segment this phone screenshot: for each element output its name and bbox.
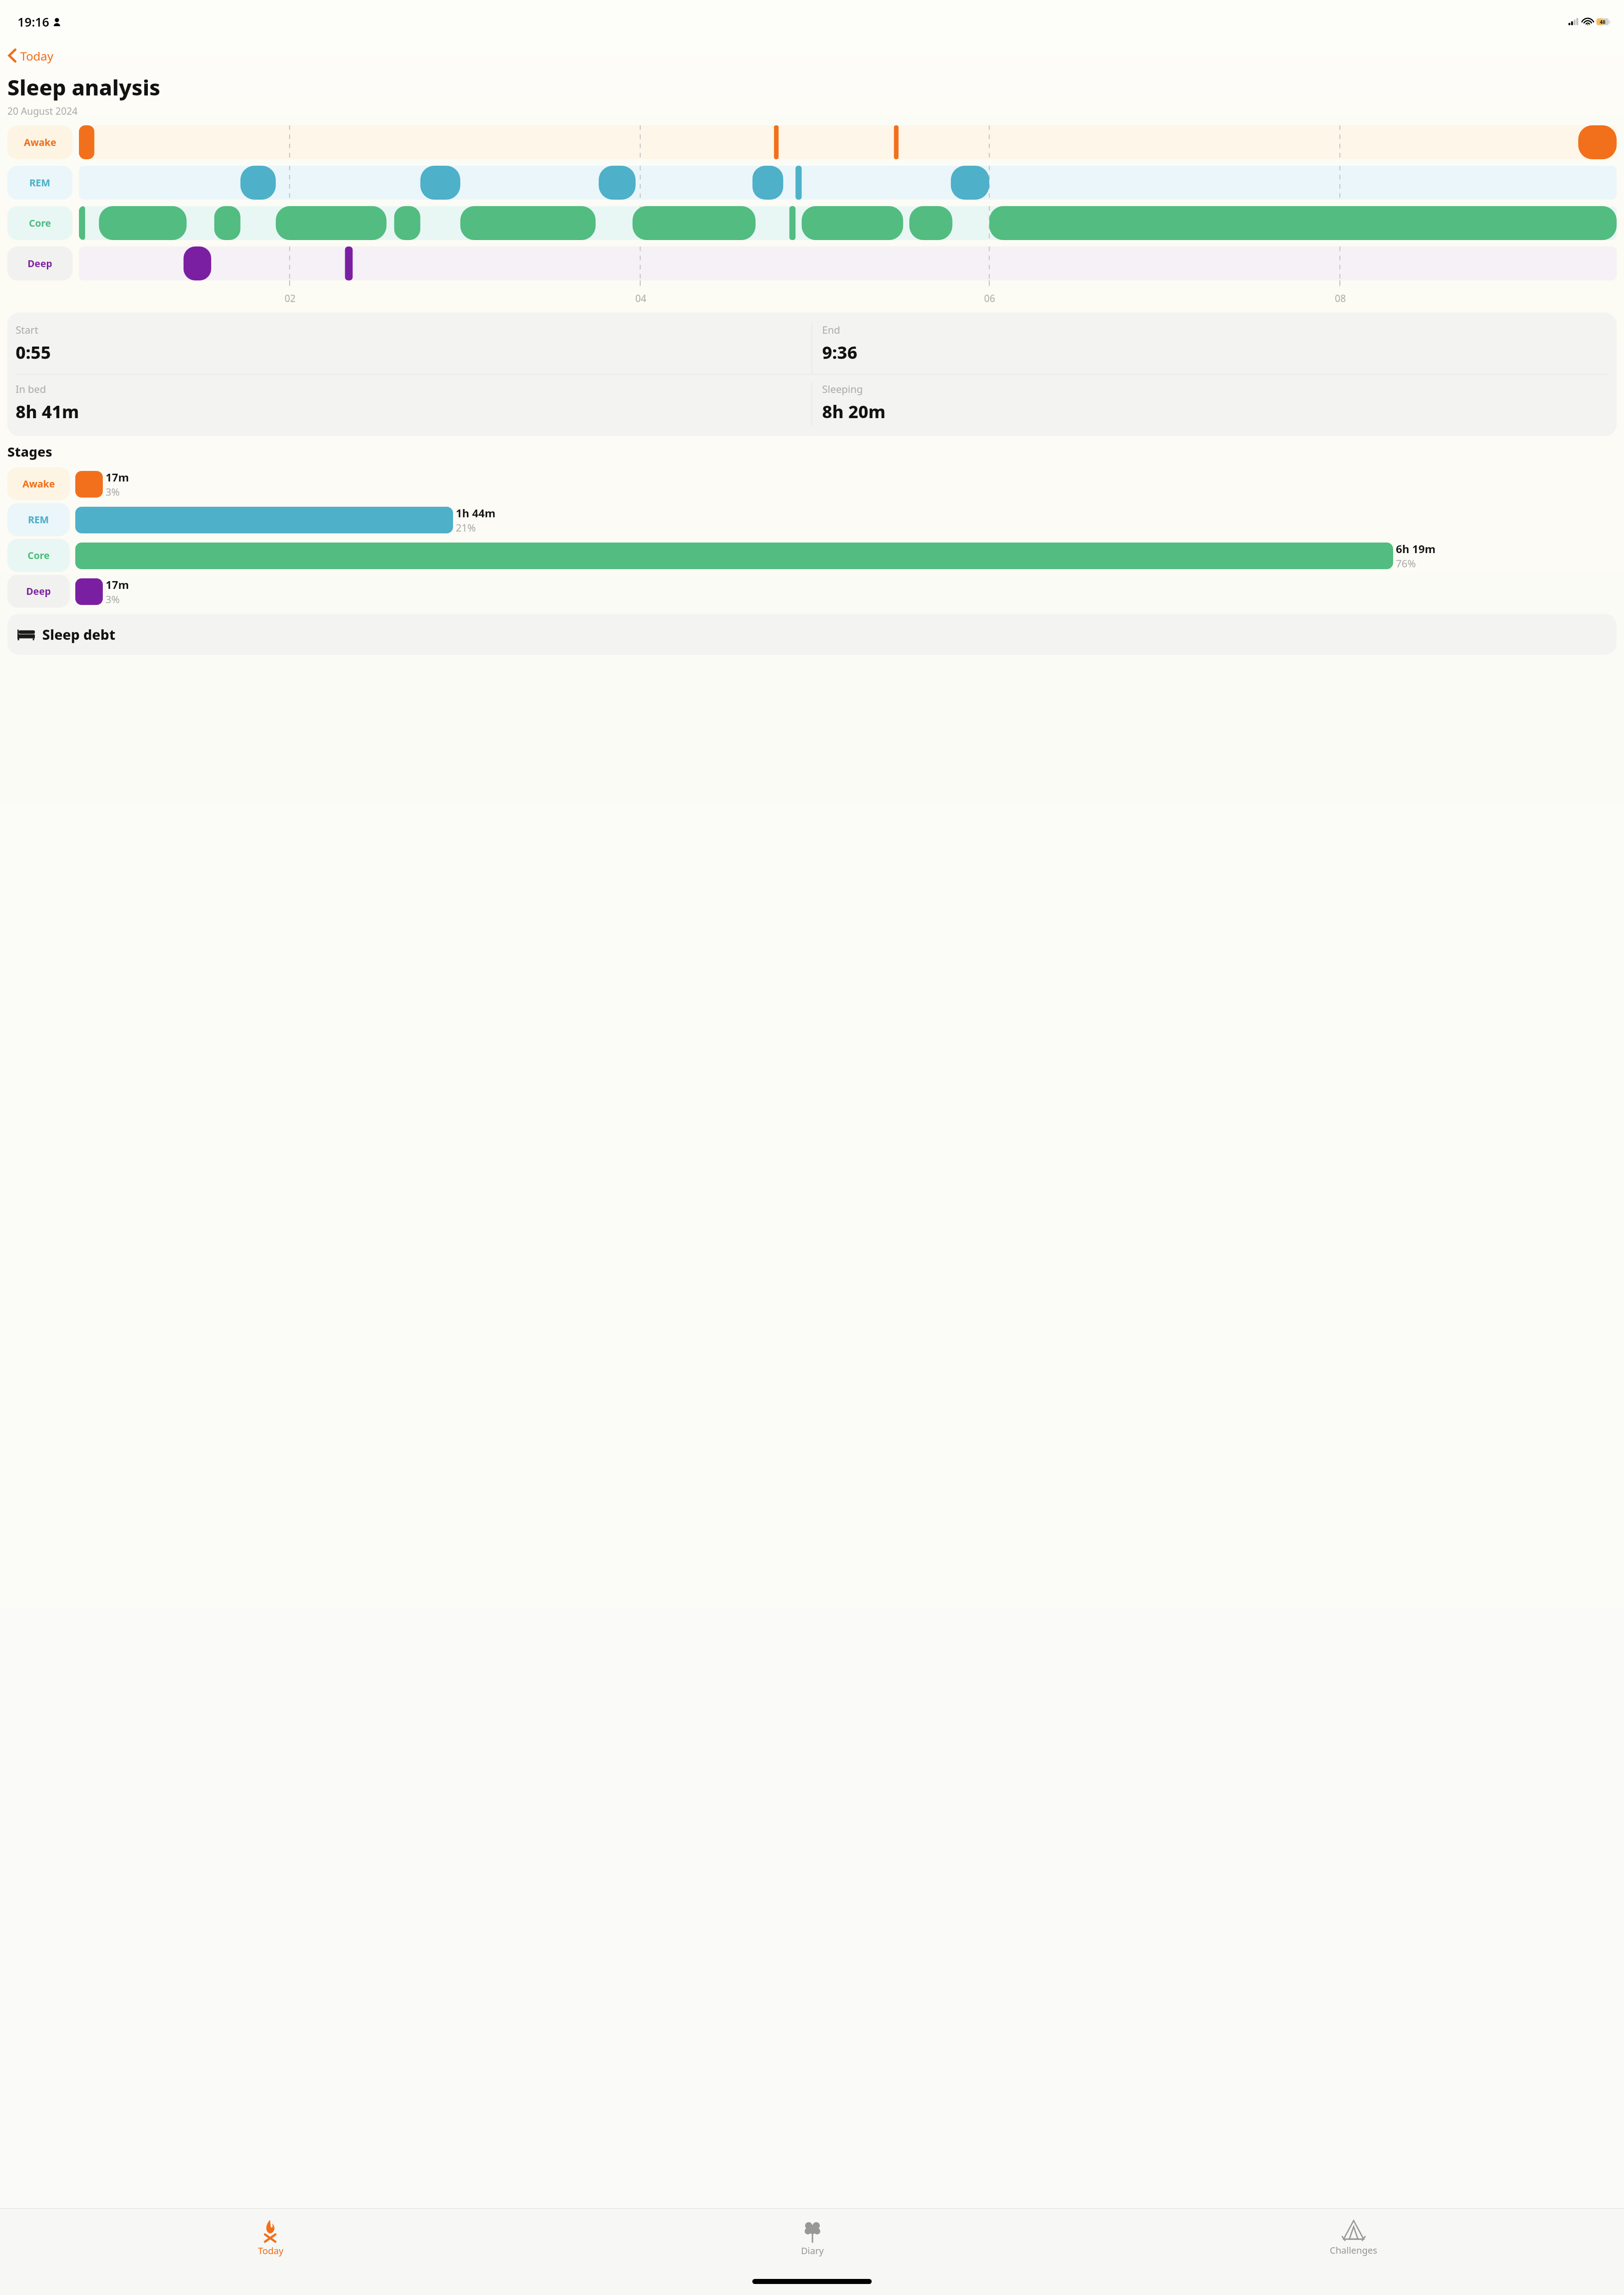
button[interactable]: Deep [7,573,1617,609]
staticText: 21% [456,521,476,534]
staticText: Deep [26,585,51,598]
staticText: 1h 44m [456,505,496,521]
staticText: 04 [635,292,647,305]
button[interactable]: Diary [542,2209,1083,2267]
button[interactable]: Challenges [1083,2209,1624,2267]
button[interactable]: REM [7,166,1617,200]
staticText: 17m [106,577,129,592]
staticText: Awake [24,136,56,149]
staticText: 02 [285,292,296,305]
button[interactable]: Start [7,313,1617,436]
staticText: 19:16 [17,13,50,30]
staticText: 76% [1396,556,1416,570]
staticText: Start [16,323,39,336]
staticText: Today [258,2245,284,2257]
button[interactable]: Core [7,206,1617,240]
button[interactable]: Deep [7,246,1617,280]
button[interactable]: Core [7,537,1617,573]
staticText: Core [29,217,51,230]
staticText: Today [20,48,54,64]
staticText: REM [28,513,49,526]
staticText: 06 [984,292,996,305]
staticText: Stages [7,442,52,460]
staticText: 48 [1600,18,1606,25]
staticText: In bed [16,382,46,396]
staticText: Sleeping [822,382,863,396]
staticText: 08 [1335,292,1346,305]
staticText: End [822,323,840,336]
staticText: 8h 41m [16,399,79,423]
staticText: Sleep analysis [7,73,161,102]
staticText: 0:55 [16,340,51,364]
staticText: Core [28,549,50,562]
staticText: Awake [22,477,55,491]
button[interactable]: Today [6,43,56,68]
staticText: REM [29,176,50,190]
staticText: 6h 19m [1396,541,1436,556]
staticText: Diary [801,2245,824,2257]
staticText: 3% [106,485,120,498]
button[interactable]: REM [7,502,1617,537]
staticText: Deep [28,257,52,270]
staticText: 17m [106,470,129,485]
button[interactable]: Awake [7,466,1617,502]
button[interactable]: Today [0,2209,542,2267]
staticText: 3% [106,592,120,606]
button[interactable]: Awake [7,125,1617,159]
staticText: 8h 20m [822,399,886,423]
staticText: 20 August 2024 [7,105,78,118]
staticText: Sleep debt [42,625,116,644]
button[interactable]: Sleep debt [7,614,1617,655]
staticText: 9:36 [822,340,857,364]
staticText: Challenges [1330,2244,1378,2256]
